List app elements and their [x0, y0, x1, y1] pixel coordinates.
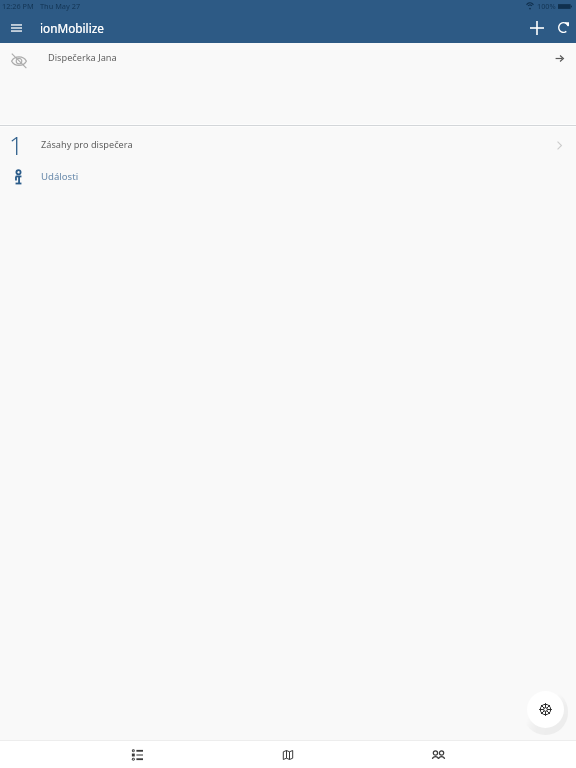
staticText: Události: [41, 170, 79, 183]
staticText: Thu May 27: [40, 1, 81, 11]
button[interactable]: Dispečerka Jana: [0, 43, 576, 78]
button[interactable]: Události: [0, 162, 576, 192]
button[interactable]: People: [363, 741, 514, 768]
staticText: Dispečerka Jana: [48, 51, 117, 64]
staticText: 100%: [537, 1, 556, 11]
staticText: ionMobilize: [40, 20, 104, 36]
button[interactable]: Navigate: [527, 691, 564, 728]
button[interactable]: List: [62, 741, 212, 768]
button[interactable]: Refresh: [550, 12, 576, 43]
staticText: Zásahy pro dispečera: [41, 138, 133, 151]
button[interactable]: Menu: [0, 12, 32, 43]
button[interactable]: 1: [0, 131, 576, 162]
button[interactable]: Map: [212, 741, 363, 768]
staticText: 1: [9, 128, 24, 159]
button[interactable]: Add: [523, 12, 550, 43]
staticText: 12:26 PM: [2, 1, 34, 11]
